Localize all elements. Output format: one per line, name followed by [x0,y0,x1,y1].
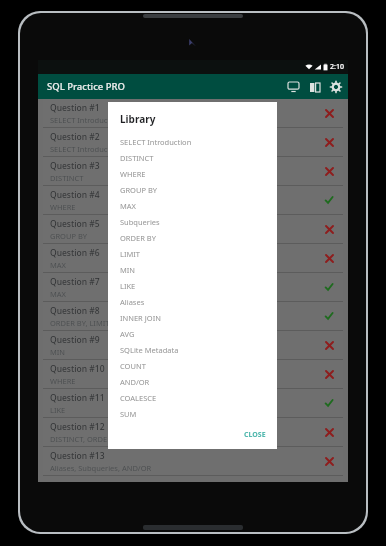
button[interactable]: ORDER BY [108,230,277,246]
staticText: Question #13 [50,450,105,462]
button[interactable]: DISTINCT [108,150,277,166]
staticText: COALESCE [120,393,157,403]
button[interactable]: SUM [108,406,277,422]
button[interactable]: AND/OR [108,374,277,390]
staticText: GROUP BY [50,231,88,241]
staticText: 2:10 [330,62,344,72]
button[interactable]: SQLite Metadata [108,342,277,358]
staticText: Subqueries [120,217,160,227]
staticText: Question #4 [50,189,100,201]
button[interactable]: COALESCE [108,390,277,406]
button[interactable]: LIMIT [108,246,277,262]
staticText: DISTINCT, ORDER BY, LIMIT [50,434,147,444]
button[interactable]: Question #8 [43,302,343,330]
staticText: ORDER BY, LIMIT [50,318,110,328]
button[interactable]: Question #6 [43,244,343,272]
staticText: Question #5 [50,218,100,230]
staticText: LIKE [120,281,136,291]
staticText: SQL Practice PRO [47,80,125,93]
button[interactable]: Question #4 [43,186,343,214]
staticText: CLOSE [244,430,266,440]
staticText: Question #6 [50,247,100,259]
button[interactable]: Question #3 [43,157,343,185]
button[interactable]: Question #10 [43,360,343,388]
button[interactable]: COUNT [108,358,277,374]
button[interactable]: Question #1 [43,99,343,127]
staticText: Question #7 [50,276,100,288]
button[interactable]: Question #9 [43,331,343,359]
staticText: DISTINCT [120,153,154,163]
staticText: AND/OR [120,377,150,387]
staticText: WHERE [50,202,76,212]
button[interactable]: WHERE [108,166,277,182]
staticText: Library [120,112,156,126]
button[interactable]: Question #2 [43,128,343,156]
button[interactable]: CLOSE [239,427,271,443]
button[interactable]: LIKE [108,278,277,294]
button[interactable]: Aliases [108,294,277,310]
staticText: AVG [120,329,135,339]
button[interactable]: Subqueries [108,214,277,230]
staticText: Question #10 [50,363,105,375]
staticText: SQLite Metadata [120,345,179,355]
button[interactable]: Question #11 [43,389,343,417]
button[interactable]: Library [304,76,326,98]
staticText: Question #9 [50,334,100,346]
staticText: Question #2 [50,131,100,143]
staticText: Question #11 [50,392,105,404]
staticText: INNER JOIN [120,313,161,323]
staticText: Question #8 [50,305,100,317]
button[interactable]: Settings [326,76,346,98]
staticText: WHERE [120,169,146,179]
button[interactable]: Question #12 [43,418,343,446]
staticText: SELECT Introduction [50,144,122,154]
staticText: MIN [50,347,66,357]
staticText: Aliases [120,297,145,307]
staticText: MAX [120,201,136,211]
staticText: LIKE [50,405,66,415]
staticText: Aliases, Subqueries, AND/OR [50,463,152,473]
staticText: LIMIT [120,249,140,259]
button[interactable]: AVG [108,326,277,342]
staticText: DISTINCT [50,173,84,183]
staticText: COUNT [120,361,146,371]
staticText: SUM [120,409,137,419]
staticText: MAX [50,289,66,299]
staticText: Question #12 [50,421,105,433]
button[interactable]: GROUP BY [108,182,277,198]
button[interactable]: Desktop mode [282,76,304,98]
button[interactable]: INNER JOIN [108,310,277,326]
staticText: WHERE [50,376,76,386]
staticText: GROUP BY [120,185,158,195]
staticText: Question #1 [50,102,100,114]
button[interactable]: Question #13 [43,447,343,475]
staticText: SELECT Introduction [120,137,192,147]
button[interactable]: Question #5 [43,215,343,243]
staticText: ORDER BY [120,233,156,243]
button[interactable]: MIN [108,262,277,278]
button[interactable]: SELECT Introduction [108,134,277,150]
staticText: SELECT Introduction [50,115,122,125]
staticText: Question #3 [50,160,100,172]
button[interactable]: MAX [108,198,277,214]
button[interactable]: Question #7 [43,273,343,301]
staticText: MAX [50,260,66,270]
staticText: MIN [120,265,136,275]
